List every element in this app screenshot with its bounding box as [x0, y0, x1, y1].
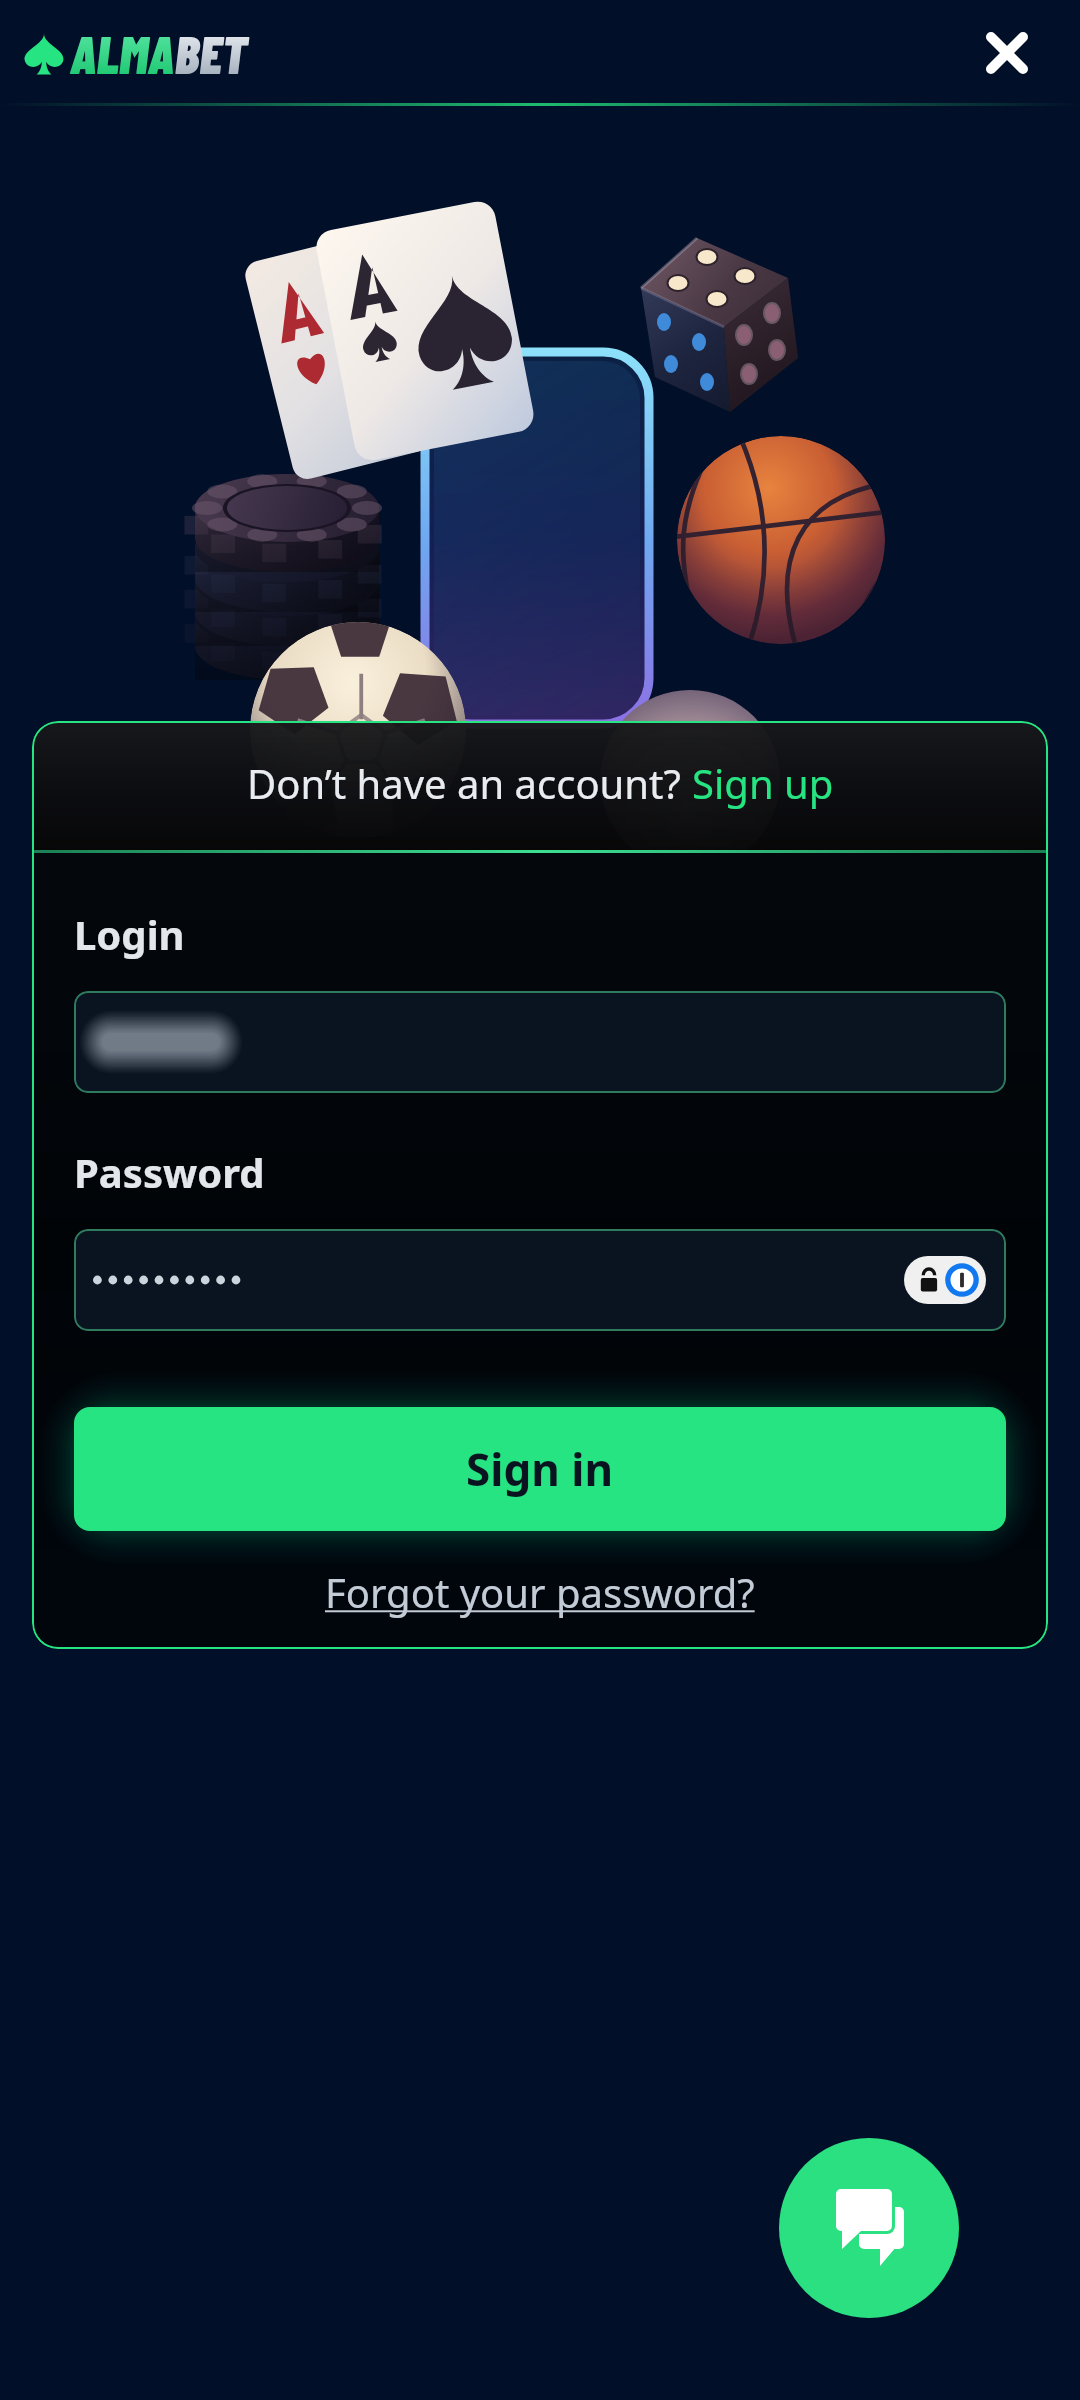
- button[interactable]: Sign up: [692, 756, 834, 810]
- staticText: Password: [74, 1145, 265, 1199]
- staticText: BET: [175, 22, 247, 84]
- staticText: Sign in: [466, 1439, 614, 1499]
- button[interactable]: Sign in: [74, 1407, 1006, 1531]
- staticText: ALMA: [70, 22, 175, 84]
- button[interactable]: Close: [970, 16, 1044, 90]
- button[interactable]: Login field: [74, 991, 1006, 1093]
- button[interactable]: Password field: [74, 1229, 1006, 1331]
- button[interactable]: Don’t have an account?: [32, 721, 1048, 853]
- button[interactable]: Forgot your password?: [325, 1565, 755, 1619]
- staticText: Login: [74, 907, 185, 961]
- staticText: Don’t have an account?: [247, 756, 692, 810]
- button[interactable]: Live chat: [779, 2138, 959, 2318]
- button[interactable]: Almabet home: [22, 22, 247, 84]
- button[interactable]: Autofill password: [904, 1256, 986, 1304]
